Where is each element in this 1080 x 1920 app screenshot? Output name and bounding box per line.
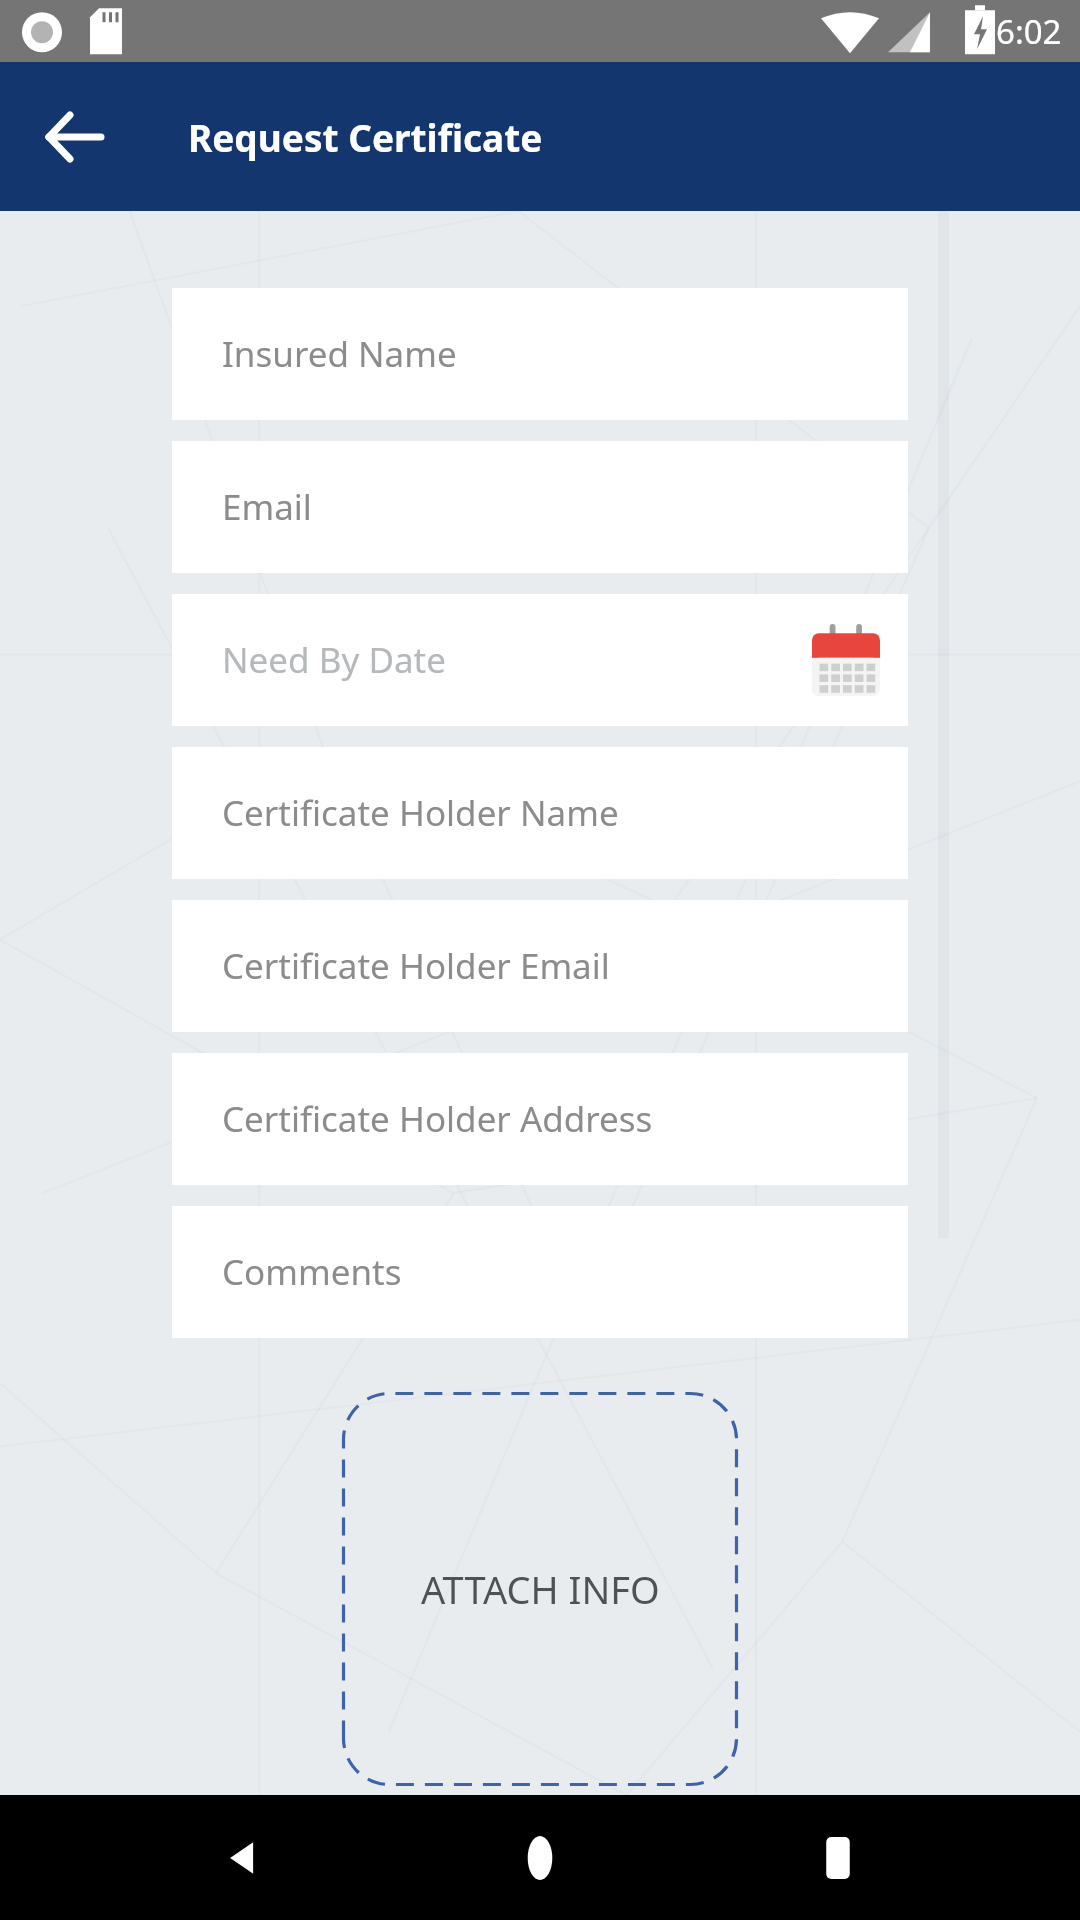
staticText: Certificate Holder Email bbox=[222, 942, 610, 990]
staticText: Request Certificate bbox=[188, 112, 543, 162]
staticText: Comments bbox=[222, 1248, 402, 1296]
button[interactable]: Back bbox=[188, 1803, 298, 1913]
button[interactable]: Certificate Holder Name bbox=[172, 747, 908, 879]
button[interactable]: Recents bbox=[783, 1803, 893, 1913]
button[interactable]: Certificate Holder Address bbox=[172, 1053, 908, 1185]
staticText: ATTACH INFO bbox=[421, 1563, 660, 1615]
button[interactable]: Need By Date bbox=[172, 594, 908, 726]
button[interactable]: Insured Name bbox=[172, 288, 908, 420]
button[interactable]: Back bbox=[30, 92, 120, 182]
staticText: Need By Date bbox=[222, 636, 446, 684]
button[interactable]: Comments bbox=[172, 1206, 908, 1338]
button[interactable]: ATTACH INFO bbox=[342, 1392, 738, 1786]
staticText: Certificate Holder Name bbox=[222, 789, 619, 837]
button[interactable]: Certificate Holder Email bbox=[172, 900, 908, 1032]
staticText: 6:02 bbox=[996, 9, 1062, 54]
button[interactable]: Email bbox=[172, 441, 908, 573]
staticText: Certificate Holder Address bbox=[222, 1095, 653, 1143]
staticText: Insured Name bbox=[222, 330, 457, 378]
staticText: Email bbox=[222, 483, 312, 531]
button[interactable]: Home bbox=[485, 1803, 595, 1913]
